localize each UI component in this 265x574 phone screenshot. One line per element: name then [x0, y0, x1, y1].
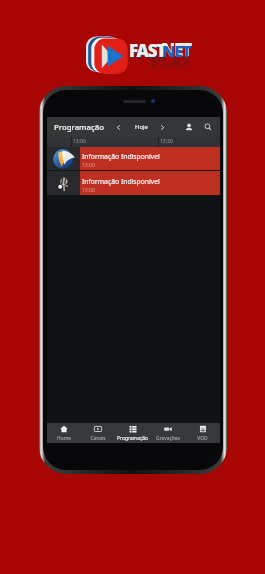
button[interactable]: Search — [202, 121, 214, 133]
button[interactable]: Informação Indisponível — [47, 147, 220, 170]
staticText: 13:00 — [82, 162, 95, 169]
button[interactable]: Hoje — [133, 119, 151, 135]
button[interactable]: Home — [47, 423, 81, 443]
staticText: FAST — [129, 39, 166, 62]
button[interactable]: Informação Indisponível — [47, 171, 220, 195]
button[interactable]: Gravações — [150, 423, 185, 443]
staticText: Canais — [90, 435, 106, 442]
staticText: FAST — [130, 40, 167, 63]
staticText: NET — [162, 40, 191, 62]
staticText: Programação — [117, 435, 148, 442]
staticText: Informação Indisponível — [82, 152, 160, 161]
button[interactable]: VOD — [185, 423, 220, 443]
button[interactable]: Profile — [183, 121, 195, 133]
button[interactable]: Previous day — [112, 121, 125, 134]
staticText: Home — [57, 435, 71, 442]
staticText: VOD — [197, 435, 208, 442]
staticText: 13:30 — [160, 138, 173, 145]
staticText: PLAY — [151, 51, 192, 71]
button[interactable]: Canais — [81, 423, 115, 443]
staticText: Hoje — [135, 123, 149, 131]
staticText: 13:00 — [73, 138, 86, 145]
button[interactable]: Next day — [156, 121, 169, 134]
staticText: NET — [161, 38, 191, 61]
staticText: Gravações — [156, 435, 180, 442]
staticText: Programação — [54, 122, 104, 133]
staticText: 13:00 — [82, 187, 95, 194]
button[interactable]: Programação — [115, 423, 150, 443]
staticText: Informação Indisponível — [82, 177, 160, 186]
